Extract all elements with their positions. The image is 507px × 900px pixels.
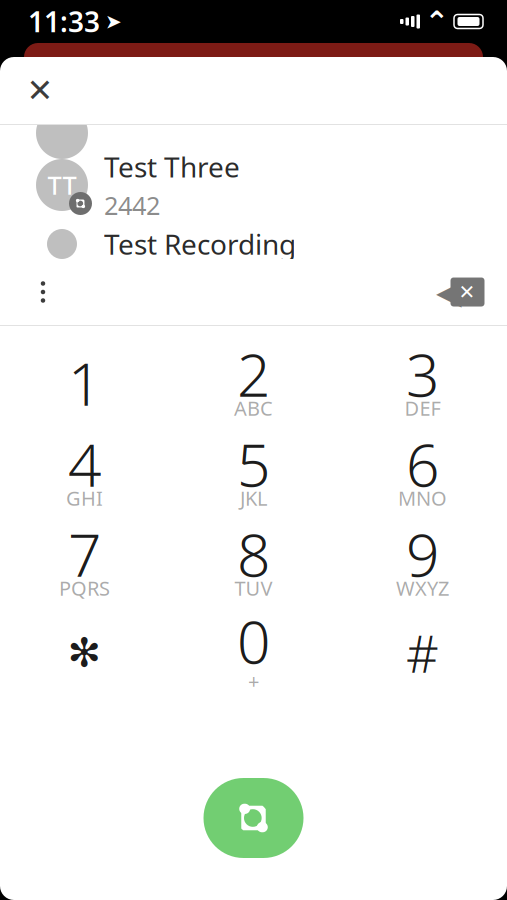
button[interactable]: 9: [338, 518, 507, 608]
button[interactable]: More options: [17, 266, 69, 318]
staticText: ✻: [67, 630, 101, 676]
button[interactable]: 8: [169, 518, 338, 608]
staticText: ✕: [458, 281, 475, 303]
button[interactable]: 0: [169, 608, 338, 698]
button[interactable]: [0, 125, 507, 141]
button[interactable]: Test Recording: [0, 229, 507, 259]
staticText: TUV: [234, 575, 272, 601]
staticText: 9: [406, 515, 439, 593]
button[interactable]: Close: [14, 64, 66, 116]
button[interactable]: Call: [203, 778, 303, 858]
button[interactable]: 7: [0, 518, 169, 608]
button[interactable]: ✻: [0, 608, 169, 698]
staticText: 11:33: [28, 3, 100, 40]
staticText: 2: [237, 335, 270, 413]
staticText: ✕: [26, 72, 53, 109]
staticText: PQRS: [59, 575, 110, 601]
staticText: ABC: [234, 395, 273, 421]
staticText: DEF: [404, 395, 440, 421]
staticText: 0: [237, 602, 270, 680]
button[interactable]: 3: [338, 338, 507, 428]
staticText: JKL: [240, 485, 267, 511]
staticText: ⌃: [424, 5, 449, 38]
button[interactable]: 2: [169, 338, 338, 428]
staticText: +: [248, 668, 259, 694]
staticText: ➤: [105, 10, 122, 33]
button[interactable]: #: [338, 608, 507, 698]
staticText: WXYZ: [396, 575, 449, 601]
button[interactable]: TT: [0, 148, 507, 222]
staticText: 7: [68, 515, 101, 593]
staticText: 1: [68, 344, 101, 422]
staticText: 2442: [104, 188, 160, 222]
staticText: 5: [237, 425, 270, 503]
staticText: 4: [68, 425, 101, 503]
staticText: TT: [47, 168, 76, 202]
staticText: ◀: [436, 273, 462, 311]
staticText: Test Three: [104, 148, 240, 185]
staticText: MNO: [398, 485, 447, 511]
button[interactable]: 1: [0, 338, 169, 428]
button[interactable]: 5: [169, 428, 338, 518]
staticText: 8: [237, 515, 270, 593]
button[interactable]: 6: [338, 428, 507, 518]
staticText: GHI: [66, 485, 103, 511]
staticText: #: [406, 619, 439, 687]
staticText: Test Recording: [104, 225, 296, 263]
staticText: 6: [406, 425, 439, 503]
button[interactable]: Delete: [429, 266, 493, 318]
staticText: 3: [406, 335, 439, 413]
button[interactable]: 4: [0, 428, 169, 518]
